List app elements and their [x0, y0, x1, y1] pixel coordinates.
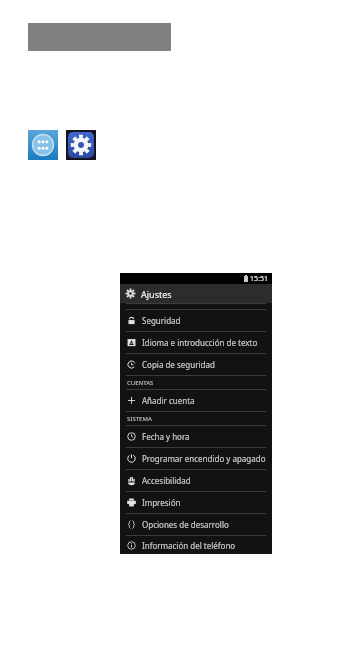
staticText: Fecha y hora	[142, 431, 190, 442]
staticText: Impresión	[142, 497, 181, 508]
button[interactable]: Opciones de desarrollo	[120, 514, 272, 535]
button[interactable]: Copia de seguridad	[120, 354, 272, 375]
button[interactable]: Programar encendido y apagado	[120, 448, 272, 469]
button[interactable]: Idioma e introducción de texto	[120, 332, 272, 353]
button[interactable]: Accesibilidad	[120, 470, 272, 491]
button[interactable]: Información del teléfono	[120, 536, 272, 554]
staticText: SISTEMA	[127, 415, 152, 423]
staticText: Ajustes	[141, 288, 172, 300]
staticText: Programar encendido y apagado	[142, 453, 266, 464]
staticText: Información del teléfono	[142, 540, 236, 551]
button[interactable]: Seguridad	[120, 310, 272, 331]
staticText: Accesibilidad	[142, 475, 191, 486]
staticText: CUENTAS	[127, 379, 154, 387]
button[interactable]: Impresión	[120, 492, 272, 513]
button[interactable]: Añadir cuenta	[120, 390, 272, 411]
button[interactable]: Ajustes	[120, 284, 272, 303]
staticText: 15:51	[250, 274, 268, 284]
staticText: Añadir cuenta	[142, 395, 195, 406]
button[interactable]: All apps	[28, 130, 58, 160]
staticText: Idioma e introducción de texto	[142, 337, 258, 348]
staticText: Opciones de desarrollo	[142, 519, 229, 530]
staticText: Seguridad	[142, 315, 181, 326]
staticText: Copia de seguridad	[142, 359, 215, 370]
button[interactable]: Settings	[66, 130, 96, 160]
button[interactable]: Fecha y hora	[120, 426, 272, 447]
